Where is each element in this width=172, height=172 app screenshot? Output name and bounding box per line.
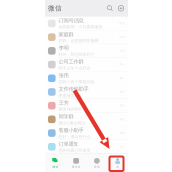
staticText: 公司工作群 bbox=[58, 58, 83, 65]
staticText: 妈妈：记得按时吃饭啊 bbox=[58, 38, 98, 43]
staticText: 周日 bbox=[119, 90, 125, 94]
button[interactable]: 我 bbox=[107, 154, 128, 172]
staticText: 周五 bbox=[119, 118, 125, 121]
staticText: 周六 bbox=[119, 104, 125, 107]
button[interactable]: 文件传输助手 bbox=[45, 85, 128, 99]
staticText: [图片] 聚会照片 bbox=[58, 120, 85, 126]
button[interactable]: 订阅号消息 bbox=[45, 17, 128, 30]
staticText: 客服小助手 bbox=[58, 127, 83, 134]
staticText: 谢谢你的帮忙 bbox=[58, 107, 82, 112]
staticText: 微信 bbox=[48, 4, 62, 12]
staticText: 订阅号消息 bbox=[58, 17, 83, 24]
button[interactable]: 微信 bbox=[45, 154, 66, 172]
button[interactable]: 家庭群 bbox=[45, 30, 128, 44]
staticText: 订单通知 bbox=[58, 141, 78, 147]
staticText: 微信 bbox=[52, 165, 58, 169]
staticText: 明天上午十点开会 bbox=[58, 66, 90, 71]
button[interactable]: 客服小助手 bbox=[45, 126, 128, 140]
staticText: 同学群 bbox=[58, 113, 73, 120]
staticText: 您好，请问有什么 bbox=[58, 134, 90, 139]
staticText: 昨天 bbox=[119, 35, 125, 39]
staticText: 昨天 bbox=[119, 49, 125, 52]
staticText: 您的包裹已经发货 bbox=[58, 148, 90, 153]
staticText: 李明 bbox=[58, 45, 68, 51]
staticText: 周一 bbox=[119, 63, 125, 66]
staticText: 通讯录 bbox=[72, 165, 81, 169]
button[interactable]: 李明 bbox=[45, 44, 128, 58]
button[interactable]: 订单通知 bbox=[45, 140, 128, 154]
button[interactable]: 公司工作群 bbox=[45, 58, 128, 72]
staticText: 我 bbox=[116, 165, 119, 169]
staticText: 发现 bbox=[94, 165, 100, 169]
staticText: 周一 bbox=[119, 77, 125, 80]
button[interactable]: 王芳 bbox=[45, 99, 128, 113]
button[interactable]: 发现 bbox=[86, 154, 107, 172]
button[interactable]: 通讯录 bbox=[66, 154, 87, 172]
staticText: 文件传输助手 bbox=[58, 86, 88, 92]
staticText: 在吗？有个事想问你 bbox=[58, 79, 94, 84]
staticText: 季度报告.pdf bbox=[58, 93, 80, 98]
button[interactable]: Add bbox=[117, 4, 125, 12]
staticText: 央视新闻：今日要闻速览 bbox=[58, 25, 102, 29]
staticText: 昨天 bbox=[119, 22, 125, 25]
button[interactable]: 张伟 bbox=[45, 72, 128, 85]
staticText: 王芳 bbox=[58, 100, 68, 106]
staticText: 张伟 bbox=[58, 72, 68, 79]
button[interactable]: Search bbox=[106, 4, 114, 12]
staticText: 好的，我已经收到了 bbox=[58, 52, 94, 57]
staticText: 周四 bbox=[119, 131, 125, 135]
staticText: 周三 bbox=[119, 145, 125, 148]
button[interactable]: 同学群 bbox=[45, 113, 128, 126]
staticText: 家庭群 bbox=[58, 31, 73, 38]
